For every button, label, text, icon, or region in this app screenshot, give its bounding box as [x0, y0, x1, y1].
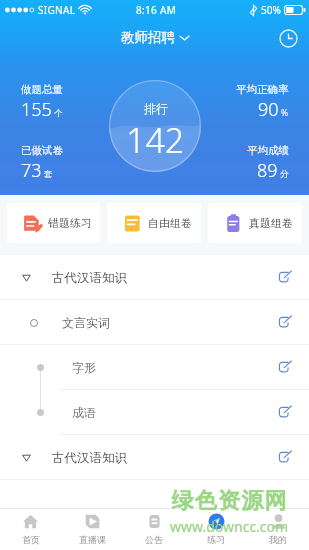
button[interactable]: Edit: [274, 447, 296, 469]
button[interactable]: 公告: [123, 508, 185, 550]
staticText: 90: [258, 97, 279, 122]
button[interactable]: 首页: [0, 508, 61, 550]
staticText: 我的: [269, 534, 287, 545]
staticText: 8:16 AM: [136, 3, 176, 17]
button[interactable]: 古代汉语知识: [0, 255, 309, 300]
button[interactable]: 错题练习: [7, 203, 100, 243]
staticText: 绿色资源网: [171, 487, 287, 515]
staticText: 已做试卷: [21, 144, 63, 157]
staticText: 成语: [72, 405, 96, 420]
staticText: 50%: [261, 3, 281, 17]
staticText: 自由组卷: [148, 216, 192, 230]
button[interactable]: 字形: [0, 345, 309, 390]
staticText: 教师招聘: [121, 29, 175, 46]
staticText: 首页: [22, 534, 40, 545]
staticText: 练习: [207, 534, 225, 545]
staticText: 142: [126, 117, 185, 163]
button[interactable]: 直播课: [61, 508, 123, 550]
staticText: 错题练习: [48, 216, 92, 230]
button[interactable]: 成语: [0, 390, 309, 435]
button[interactable]: Edit: [274, 402, 296, 424]
button[interactable]: 文言实词: [0, 300, 309, 345]
staticText: 平均正确率: [236, 83, 289, 96]
staticText: %: [281, 107, 289, 119]
button[interactable]: 自由组卷: [107, 203, 201, 243]
staticText: 古代汉语知识: [52, 270, 127, 286]
staticText: 73: [21, 158, 42, 183]
staticText: www.downcc.com: [170, 517, 289, 536]
staticText: 做题总量: [21, 83, 63, 96]
staticText: 平均成绩: [247, 144, 289, 157]
staticText: 个: [54, 108, 63, 119]
staticText: 155: [21, 97, 52, 122]
button[interactable]: 真题组卷: [208, 203, 302, 243]
button[interactable]: 练习: [185, 508, 247, 550]
staticText: 分: [280, 169, 289, 180]
staticText: 真题组卷: [249, 216, 293, 230]
button[interactable]: 我的: [247, 508, 309, 550]
staticText: 89: [257, 158, 278, 183]
staticText: SIGNAL: [38, 3, 76, 17]
staticText: 字形: [72, 360, 96, 375]
button[interactable]: Edit: [274, 267, 296, 289]
staticText: 直播课: [79, 534, 106, 545]
button[interactable]: Edit: [274, 312, 296, 334]
staticText: 排行: [144, 101, 168, 116]
staticText: 套: [44, 169, 53, 180]
staticText: 公告: [145, 534, 163, 545]
button[interactable]: History: [276, 26, 300, 50]
staticText: 古代汉语知识: [52, 450, 127, 466]
button[interactable]: 古代汉语知识: [0, 435, 309, 480]
button[interactable]: Edit: [274, 357, 296, 379]
button[interactable]: 教师招聘: [113, 24, 197, 51]
staticText: 文言实词: [62, 315, 110, 330]
